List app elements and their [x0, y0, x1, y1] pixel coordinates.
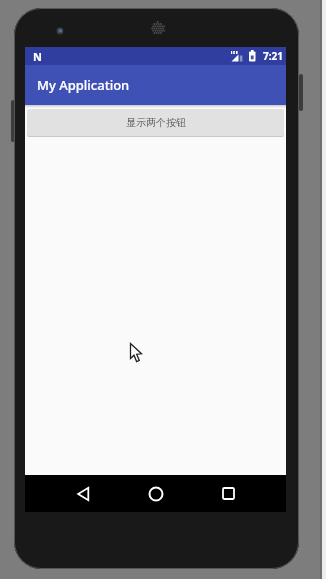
button[interactable] [132, 475, 180, 512]
button[interactable]: 显示两个按钮 [27, 109, 284, 136]
button[interactable] [60, 475, 108, 512]
staticText: 7:21 [263, 49, 283, 63]
staticText: 显示两个按钮 [126, 116, 186, 129]
staticText: My Application [37, 76, 130, 94]
button[interactable] [204, 475, 252, 512]
staticText: N [33, 49, 42, 64]
